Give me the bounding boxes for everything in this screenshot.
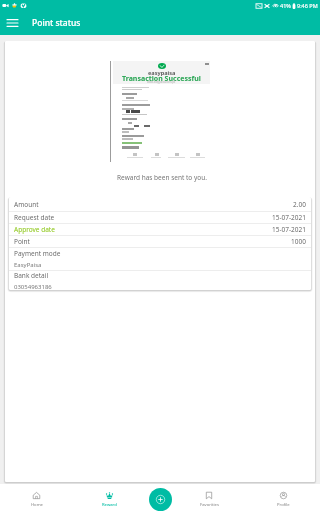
button[interactable]: Payment mode [9, 248, 311, 270]
staticText: 03054963186 [14, 283, 52, 290]
staticText: easypaisa [148, 69, 176, 77]
staticText: Reward has been sent to you. [117, 173, 207, 182]
button[interactable]: Open navigation drawer [3, 14, 21, 32]
staticText: 9:46 PM [297, 2, 318, 9]
button[interactable]: Home [0, 484, 73, 512]
button[interactable]: Request date [9, 212, 311, 223]
button[interactable]: Bank detail [9, 271, 311, 290]
staticText: www.easypaisa.com.pk [147, 80, 176, 84]
staticText: 15-07-2021 [272, 225, 306, 234]
staticText: Transaction Successful [122, 74, 201, 84]
button[interactable]: Add [149, 488, 172, 511]
staticText: 41% [280, 2, 291, 9]
button[interactable]: Amount [9, 197, 311, 211]
button[interactable]: Favorities [172, 484, 246, 512]
staticText: Bank detail [14, 271, 49, 280]
staticText: 1000 [291, 237, 306, 246]
staticText: 15-07-2021 [272, 213, 306, 222]
button[interactable]: Point [9, 236, 311, 247]
staticText: Approve date [14, 225, 55, 234]
staticText: Point status [32, 17, 81, 29]
button[interactable]: Reward [73, 484, 146, 512]
button[interactable]: Approve date [9, 224, 311, 235]
staticText: Favorities [200, 502, 219, 508]
staticText: Request date [14, 213, 55, 222]
staticText: Profile [277, 502, 290, 508]
staticText: Payment mode [14, 249, 61, 258]
staticText: Home [31, 502, 43, 508]
staticText: Point [14, 237, 30, 246]
staticText: Amount [14, 200, 39, 209]
staticText: Reward [102, 502, 117, 508]
staticText: 2.00 [293, 200, 306, 209]
staticText: EasyPaisa [14, 261, 42, 269]
button[interactable]: Profile [246, 484, 320, 512]
